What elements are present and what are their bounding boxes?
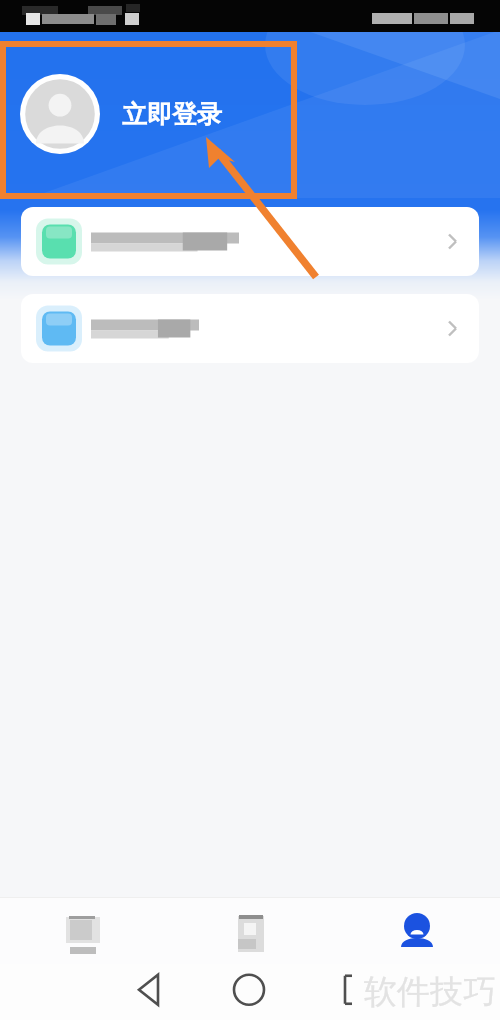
- button[interactable]: [21, 207, 479, 276]
- button[interactable]: 立即登录: [20, 73, 222, 155]
- staticText: 立即登录: [122, 99, 222, 130]
- button[interactable]: 我的: [333, 898, 500, 964]
- button[interactable]: 订单: [166, 898, 333, 964]
- staticText: 软件技巧: [364, 971, 496, 1013]
- button[interactable]: [21, 294, 479, 363]
- button[interactable]: 消息: [0, 898, 166, 964]
